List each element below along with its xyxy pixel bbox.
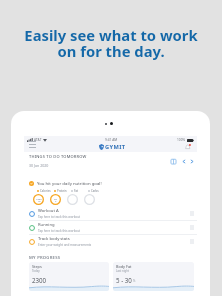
staticText: 100%	[177, 138, 186, 142]
staticText: g	[55, 200, 57, 203]
staticText: Last night	[116, 269, 130, 273]
button[interactable]: Previous day	[182, 159, 186, 164]
staticText: 30 Jan 2020	[29, 163, 49, 168]
staticText: Easily see what to work on for the day.	[0, 25, 222, 61]
staticText: GYMIT	[105, 143, 126, 151]
staticText: THINGS TO DO TOMORROW	[29, 154, 87, 159]
staticText: 5 - 30	[116, 276, 132, 284]
staticText: Fat	[74, 189, 79, 193]
staticText: Body Fat	[116, 264, 132, 269]
button[interactable]: Menu	[28, 140, 37, 149]
staticText: Calories	[40, 189, 51, 193]
staticText: Tap here to track this workout	[38, 229, 81, 233]
button[interactable]: Steps	[29, 262, 109, 291]
button[interactable]: Notifications	[184, 143, 192, 151]
button[interactable]: You hit your daily nutrition goal!	[24, 180, 197, 205]
button[interactable]: Workout A	[24, 207, 197, 220]
staticText: Enter your weight and measurements	[38, 243, 92, 247]
button[interactable]: Track body stats	[24, 235, 197, 248]
staticText: 1850	[36, 197, 42, 200]
button[interactable]: Running	[24, 221, 197, 234]
staticText: You hit your daily nutrition goal!	[37, 180, 102, 186]
staticText: 9:41 AM	[105, 138, 118, 142]
staticText: Today	[32, 269, 40, 273]
staticText: Track body stats	[38, 236, 70, 242]
staticText: AT&T	[34, 138, 42, 142]
staticText: 2300	[32, 276, 47, 284]
staticText: Workout A	[38, 208, 59, 214]
staticText: %	[133, 279, 136, 283]
staticText: Running	[38, 222, 55, 228]
button[interactable]: Next day	[190, 159, 194, 164]
staticText: cal	[38, 200, 41, 203]
staticText: Steps	[32, 264, 42, 269]
staticText: Protein	[57, 189, 67, 193]
staticText: 95	[54, 197, 57, 200]
staticText: Carbs	[91, 189, 99, 193]
button[interactable]: Calendar	[170, 158, 177, 165]
button[interactable]: Body Fat	[113, 262, 194, 291]
staticText: Tap here to track this workout	[38, 215, 81, 219]
staticText: MY PROGRESS	[29, 255, 61, 261]
